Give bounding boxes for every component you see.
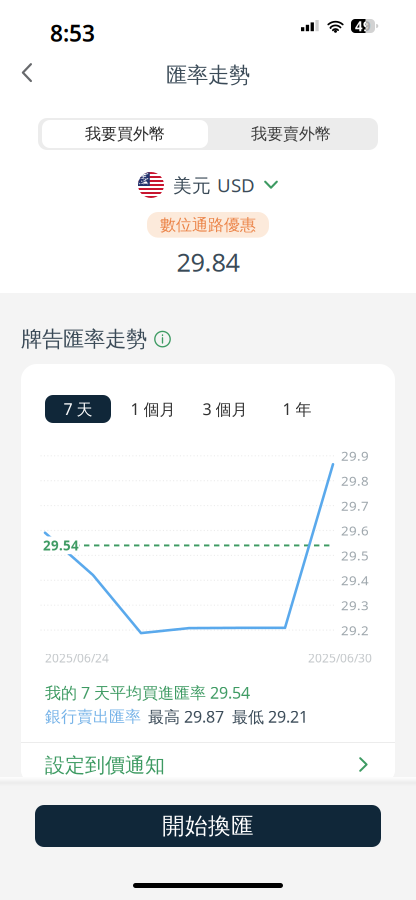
staticText: 數位通路優惠 <box>160 215 256 235</box>
button[interactable]: Back <box>7 53 47 93</box>
staticText: 29.84 <box>176 245 239 279</box>
staticText: 美元 USD <box>173 173 255 197</box>
button[interactable]: 1 年 <box>271 395 323 423</box>
button[interactable]: 開始換匯 <box>35 805 381 847</box>
staticText: 最高 29.87 最低 29.21 <box>148 706 308 727</box>
staticText: 29.54 <box>43 536 79 554</box>
staticText: 29.3 <box>341 596 369 614</box>
staticText: 49 <box>355 17 371 35</box>
staticText: 29.9 <box>341 447 369 464</box>
button[interactable]: 1 個月 <box>121 395 185 423</box>
staticText: 29.7 <box>341 497 369 514</box>
staticText: 2025/06/30 <box>308 650 372 666</box>
staticText: 29.8 <box>341 472 369 489</box>
staticText: 1 個月 <box>130 398 175 420</box>
staticText: 29.2 <box>341 621 369 639</box>
staticText: 設定到價通知 <box>45 753 165 778</box>
button[interactable]: 7 天 <box>45 395 111 423</box>
staticText: 我要買外幣 <box>85 124 165 144</box>
button[interactable]: 美元 USD <box>138 170 278 200</box>
staticText: 29.6 <box>341 521 369 539</box>
staticText: 2025/06/24 <box>45 650 109 666</box>
staticText: 3 個月 <box>202 398 247 420</box>
staticText: 開始換匯 <box>162 812 254 840</box>
button[interactable]: 我要賣外幣 <box>208 120 374 148</box>
staticText: 7 天 <box>63 398 92 420</box>
button[interactable]: 設定到價通知 <box>21 743 395 786</box>
staticText: 1 年 <box>282 398 311 420</box>
staticText: 我要賣外幣 <box>251 124 331 144</box>
staticText: 匯率走勢 <box>166 62 250 88</box>
staticText: 我的 7 天平均買進匯率 29.54 <box>45 682 250 703</box>
button[interactable]: 我要買外幣 <box>42 120 208 148</box>
staticText: 29.4 <box>341 571 369 589</box>
staticText: 49 <box>355 17 371 35</box>
staticText: 牌告匯率走勢 <box>21 326 147 352</box>
staticText: 29.5 <box>341 546 369 564</box>
staticText: 銀行賣出匯率 <box>45 707 141 726</box>
staticText: 8:53 <box>50 18 95 48</box>
button[interactable]: 3 個月 <box>193 395 257 423</box>
